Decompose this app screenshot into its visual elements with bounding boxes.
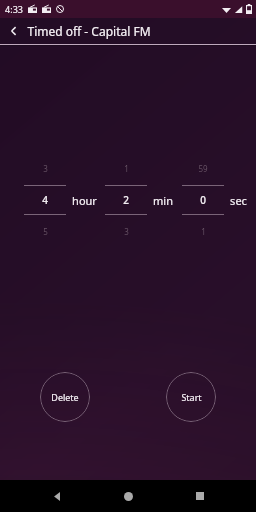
staticText: 0 xyxy=(200,193,206,207)
button[interactable]: 1 xyxy=(105,163,147,237)
button[interactable]: Delete xyxy=(40,372,90,422)
staticText: 5 xyxy=(43,226,48,237)
button[interactable]: 3 xyxy=(24,163,66,237)
staticText: 1 xyxy=(201,226,206,237)
staticText: hour xyxy=(72,193,97,208)
button[interactable]: Back xyxy=(0,18,256,44)
staticText: Start xyxy=(181,391,202,403)
staticText: 4:33 xyxy=(5,3,23,15)
staticText: 2 xyxy=(123,193,129,207)
button[interactable]: Recent apps xyxy=(185,481,215,511)
staticText: 59 xyxy=(198,163,208,174)
staticText: sec xyxy=(230,193,247,208)
button[interactable]: Start xyxy=(166,372,216,422)
button[interactable]: Back xyxy=(42,481,72,511)
staticText: Delete xyxy=(51,391,79,403)
staticText: min xyxy=(153,193,173,208)
button[interactable]: Home xyxy=(113,481,143,511)
staticText: 3 xyxy=(43,163,48,174)
staticText: 1 xyxy=(124,163,129,174)
staticText: 4 xyxy=(42,193,48,207)
button[interactable]: Back xyxy=(7,24,21,38)
staticText: Timed off - Capital FM xyxy=(27,23,151,39)
button[interactable]: 59 xyxy=(182,163,224,237)
staticText: 3 xyxy=(124,226,129,237)
